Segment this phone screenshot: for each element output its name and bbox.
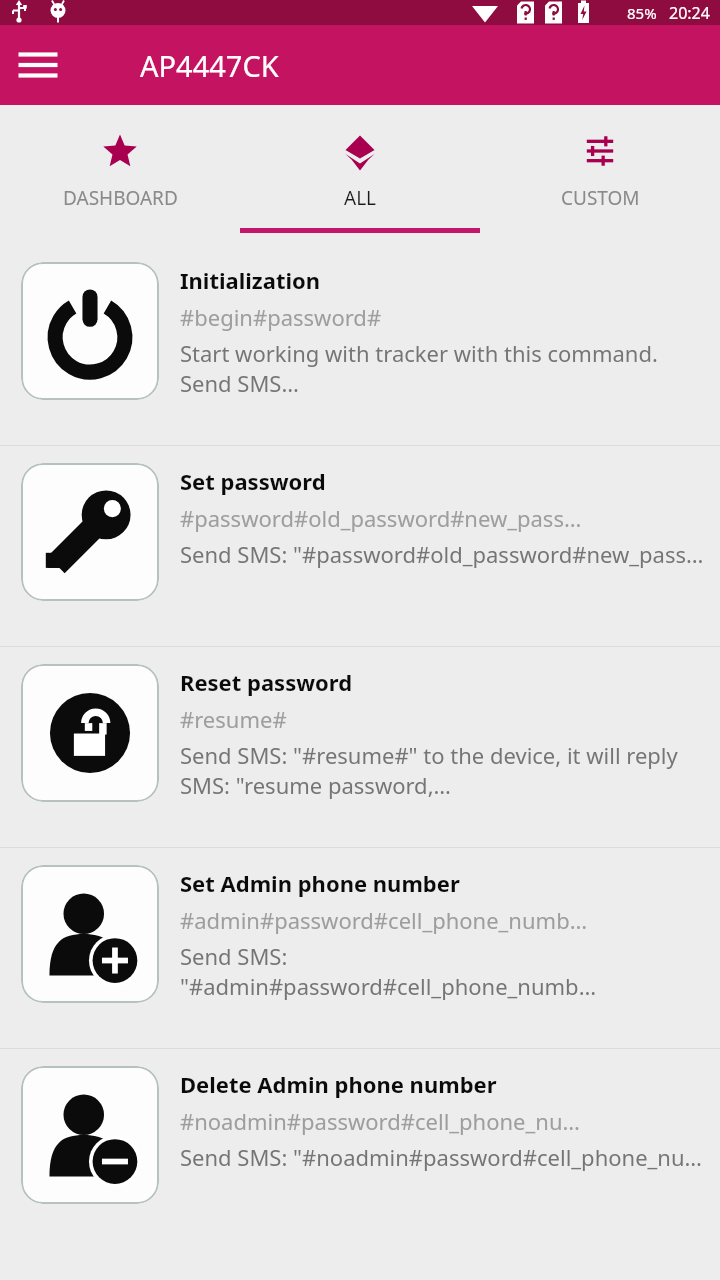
staticText: Send SMS: "#resume#" to the device, it w… xyxy=(180,740,708,801)
staticText: Start working with tracker with this com… xyxy=(180,338,708,399)
button[interactable]: DASHBOARD xyxy=(0,105,240,245)
staticText: #resume# xyxy=(180,704,287,734)
staticText: Send SMS: "#password#old_password#new_pa… xyxy=(180,539,704,569)
staticText: DASHBOARD xyxy=(63,185,178,211)
staticText: CUSTOM xyxy=(561,185,640,211)
staticText: Delete Admin phone number xyxy=(180,1069,497,1099)
staticText: #admin#password#cell_phone_numb… xyxy=(180,905,588,935)
staticText: 85% xyxy=(627,3,657,23)
button[interactable]: Set password xyxy=(0,446,720,646)
staticText: #password#old_password#new_pass… xyxy=(180,503,582,533)
staticText: #noadmin#password#cell_phone_nu… xyxy=(180,1106,580,1136)
staticText: Initialization xyxy=(180,265,321,295)
button[interactable]: Initialization xyxy=(0,245,720,445)
staticText: ALL xyxy=(344,185,377,211)
button[interactable]: Reset password xyxy=(0,647,720,847)
staticText: Set Admin phone number xyxy=(180,868,460,898)
staticText: Send SMS: "#noadmin#password#cell_phone_… xyxy=(180,1142,702,1172)
staticText: AP4447CK xyxy=(140,46,279,85)
button[interactable]: Set Admin phone number xyxy=(0,848,720,1048)
button[interactable]: Delete Admin phone number xyxy=(0,1049,720,1249)
staticText: #begin#password# xyxy=(180,302,382,332)
button[interactable]: ALL xyxy=(240,105,480,245)
button[interactable]: Open navigation menu xyxy=(16,43,60,87)
button[interactable]: CUSTOM xyxy=(480,105,720,245)
staticText: Send SMS: "#admin#password#cell_phone_nu… xyxy=(180,941,708,1002)
staticText: 20:24 xyxy=(669,2,710,24)
staticText: Set password xyxy=(180,466,326,496)
staticText: Reset password xyxy=(180,667,353,697)
